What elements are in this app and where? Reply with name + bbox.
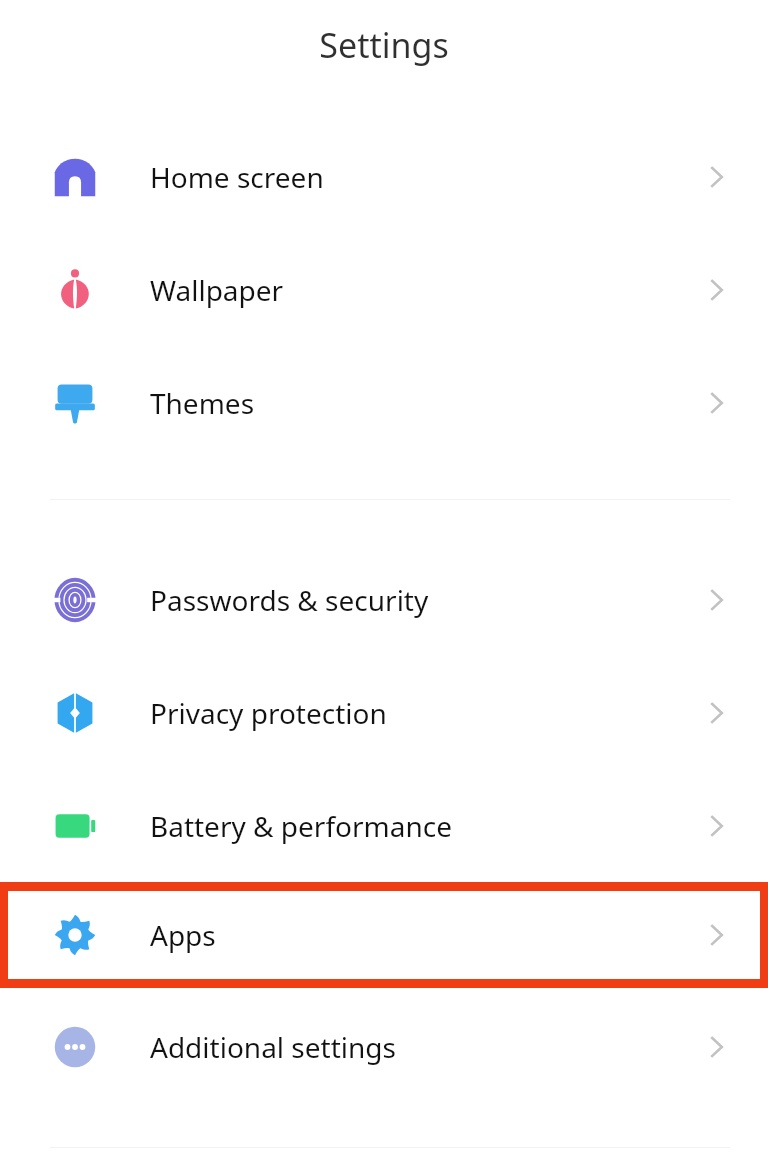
staticText: Battery & performance — [150, 807, 452, 845]
button[interactable]: Additional settings — [0, 988, 768, 1106]
staticText: Apps — [150, 916, 216, 954]
button[interactable]: Privacy protection — [0, 656, 768, 769]
staticText: Additional settings — [150, 1028, 396, 1066]
button[interactable]: Home screen — [0, 120, 768, 233]
button[interactable]: Themes — [0, 346, 768, 459]
button[interactable]: Passwords & security — [0, 543, 768, 656]
button[interactable]: Wallpaper — [0, 233, 768, 346]
staticText: Wallpaper — [150, 271, 284, 309]
staticText: Privacy protection — [150, 694, 387, 732]
staticText: Settings — [319, 22, 449, 68]
staticText: Passwords & security — [150, 581, 429, 619]
button[interactable]: Battery & performance — [0, 769, 768, 882]
staticText: Home screen — [150, 158, 324, 196]
staticText: Themes — [150, 384, 255, 422]
button[interactable]: Apps — [8, 891, 760, 979]
